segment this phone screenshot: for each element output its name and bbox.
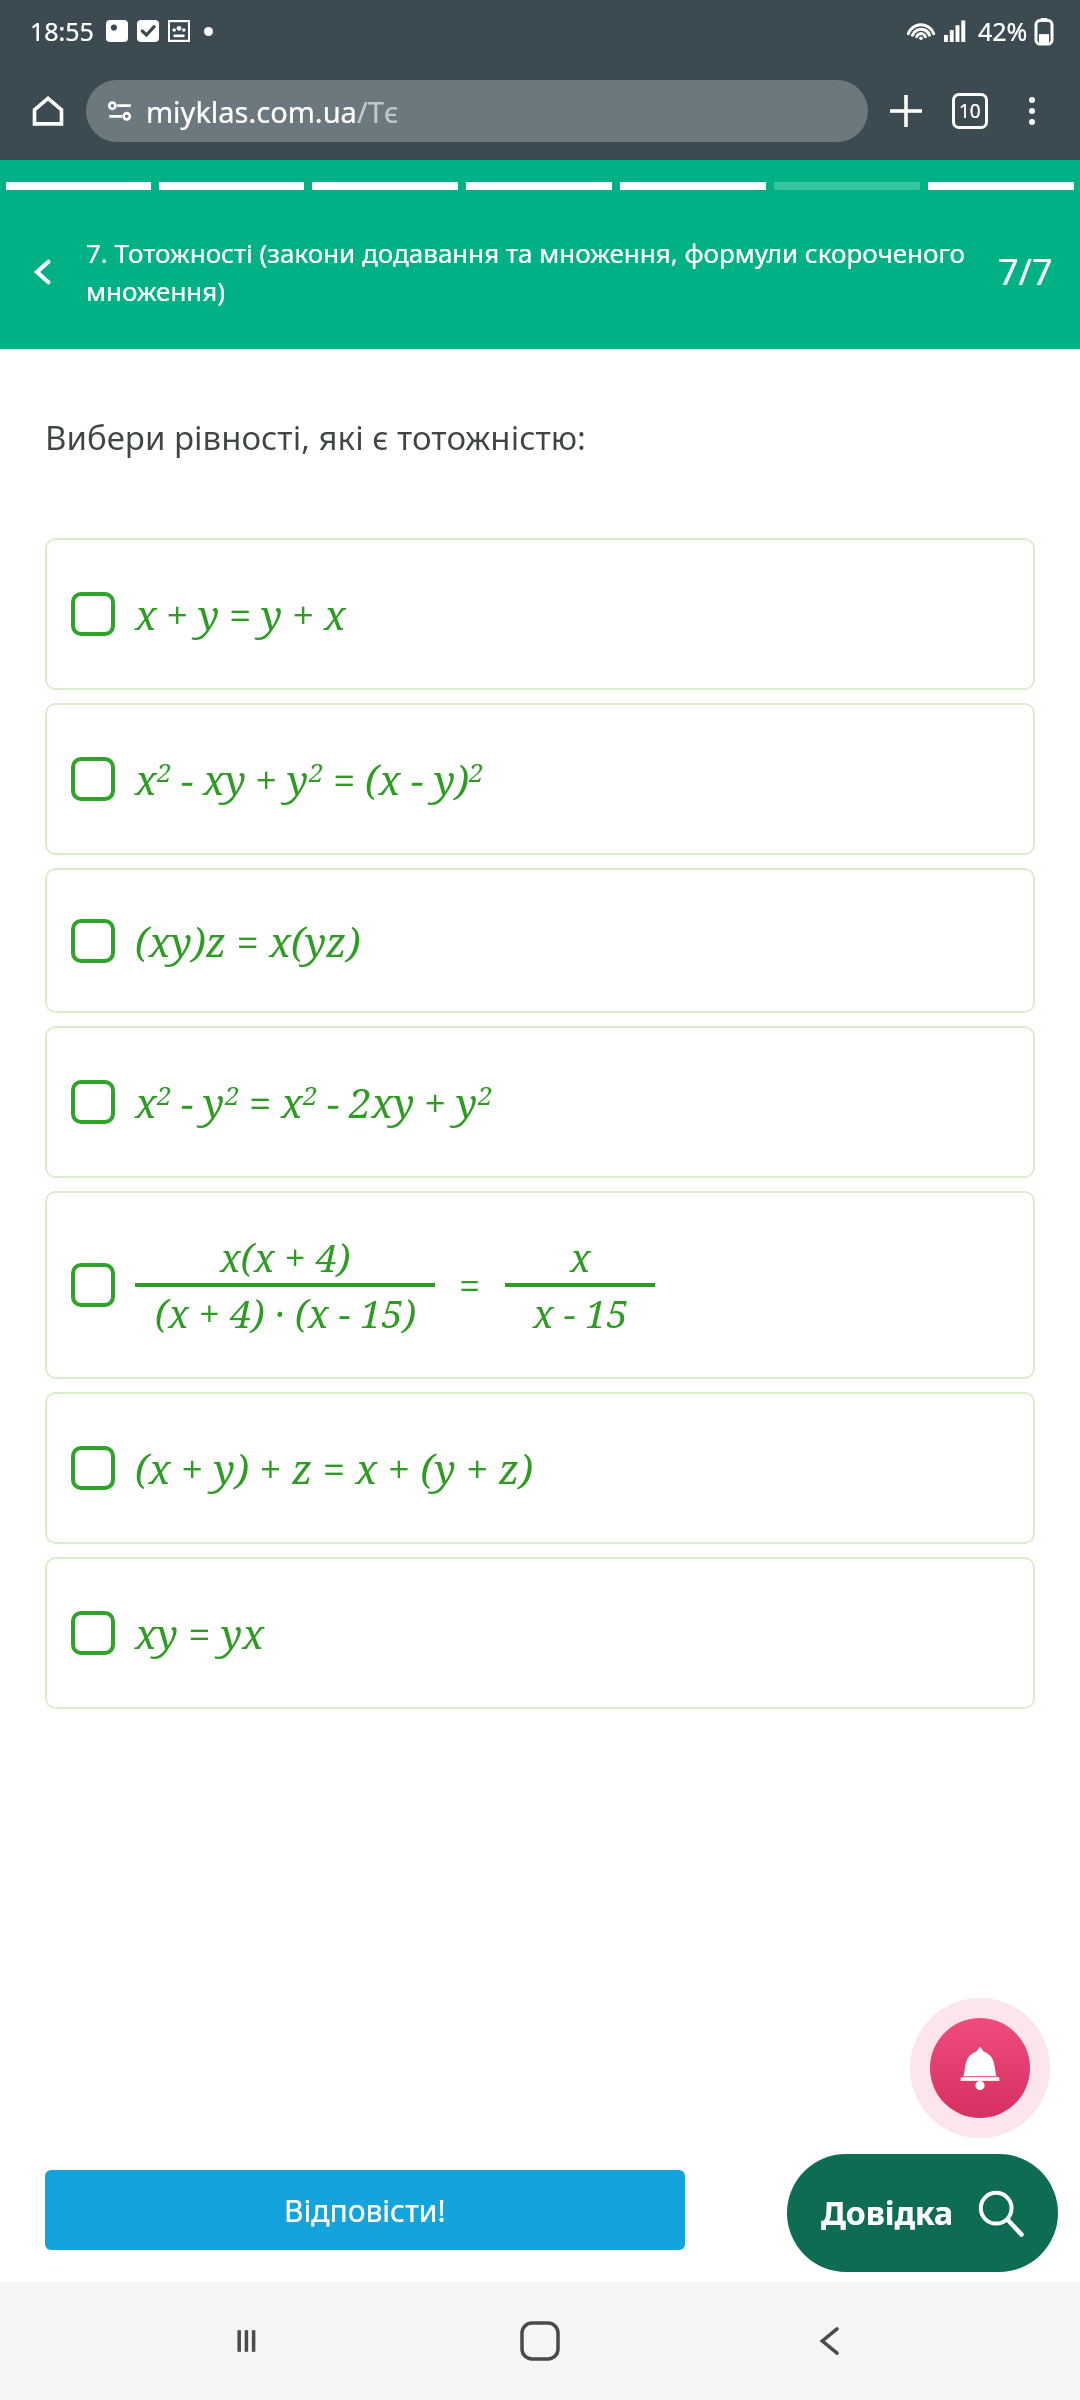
staticText: x(x + 4) <box>220 1231 351 1283</box>
staticText: 18:55 <box>30 14 94 48</box>
button[interactable]: miyklas.com.ua <box>86 80 868 142</box>
button[interactable]: New tab <box>878 83 934 139</box>
button[interactable]: Home <box>22 85 74 137</box>
staticText: x <box>570 1231 591 1283</box>
staticText: 10 <box>959 98 981 124</box>
button[interactable]: Recent apps <box>210 2301 290 2381</box>
staticText: − <box>181 752 194 806</box>
staticText: Відповісти! <box>284 2190 446 2231</box>
staticText: 2 <box>157 754 172 789</box>
staticText: x − 15 <box>533 1287 628 1339</box>
staticText: − <box>327 1075 340 1129</box>
staticText: y <box>287 752 309 806</box>
staticText: + <box>424 1075 447 1129</box>
staticText: 7. Тотожності (закони додавання та множе… <box>86 235 970 308</box>
button[interactable]: Відповісти! <box>45 2170 685 2250</box>
staticText: − <box>181 1075 194 1129</box>
staticText: 2 <box>309 754 324 789</box>
button[interactable]: x(x + 4) <box>45 1191 1035 1379</box>
staticText: + <box>166 587 189 641</box>
button[interactable]: Tabs: 10 <box>942 83 998 139</box>
staticText: 2 <box>478 1077 493 1112</box>
button[interactable]: x <box>45 1026 1035 1178</box>
staticText: 2 <box>469 754 484 789</box>
staticText: 42% <box>978 14 1028 48</box>
staticText: = <box>249 1075 272 1129</box>
button[interactable]: Notifications <box>930 2018 1030 2118</box>
staticText: Довідка <box>821 2191 954 2235</box>
button[interactable]: Back <box>790 2301 870 2381</box>
button[interactable]: x <box>45 538 1035 690</box>
staticText: x <box>135 1075 157 1129</box>
staticText: /Tє <box>357 92 399 131</box>
button[interactable]: x <box>45 703 1035 855</box>
button[interactable]: xy = yx <box>45 1557 1035 1709</box>
staticText: y <box>261 587 283 641</box>
staticText: x <box>135 752 157 806</box>
staticText: = <box>459 1259 481 1311</box>
staticText: 2 <box>157 1077 172 1112</box>
staticText: (x + y) + z = x + (y + z) <box>135 1441 533 1495</box>
staticText: + <box>292 587 315 641</box>
staticText: Вибери рівності, які є тотожністю: <box>45 415 586 460</box>
staticText: x <box>135 587 157 641</box>
staticText: xy <box>203 752 246 806</box>
button[interactable]: Home <box>500 2301 580 2381</box>
staticText: (xy)z = x(yz) <box>135 914 361 968</box>
staticText: y <box>203 1075 225 1129</box>
staticText: = <box>229 587 252 641</box>
staticText: y <box>198 587 220 641</box>
staticText: y <box>456 1075 478 1129</box>
staticText: xy = yx <box>135 1606 265 1660</box>
staticText: x <box>281 1075 303 1129</box>
button[interactable]: Довідка <box>787 2154 1058 2272</box>
button[interactable]: Back <box>0 194 86 349</box>
staticText: 2xy <box>349 1075 415 1129</box>
button[interactable]: More options <box>1006 85 1058 137</box>
staticText: + <box>255 752 278 806</box>
button[interactable]: (x + y) + z = x + (y + z) <box>45 1392 1035 1544</box>
staticText: miyklas.com.ua <box>146 92 357 131</box>
staticText: (x − y) <box>365 752 469 806</box>
button[interactable]: (xy)z = x(yz) <box>45 868 1035 1013</box>
staticText: 2 <box>303 1077 318 1112</box>
staticText: 7/7 <box>998 247 1053 296</box>
staticText: = <box>333 752 356 806</box>
staticText: 2 <box>225 1077 240 1112</box>
staticText: (x + 4) · (x − 15) <box>155 1287 416 1339</box>
staticText: x <box>324 587 346 641</box>
